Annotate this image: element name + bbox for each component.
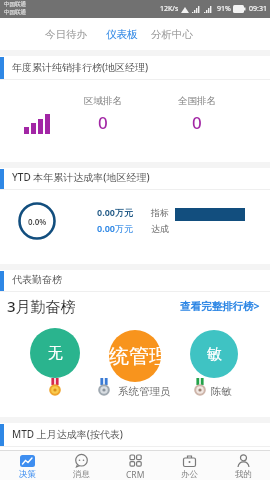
button[interactable]: 统管理 bbox=[109, 330, 161, 382]
staticText: 0.0% bbox=[28, 216, 47, 227]
staticText: 中国联通 bbox=[4, 1, 26, 8]
button[interactable]: 敏 bbox=[190, 330, 238, 378]
staticText: 查看完整排行榜> bbox=[180, 299, 260, 313]
staticText: 0 bbox=[192, 111, 202, 134]
staticText: 消息 bbox=[73, 469, 90, 480]
staticText: MTD 上月达成率(按代表) bbox=[12, 427, 123, 441]
staticText: 年度累计纯销排行榜(地区经理) bbox=[12, 60, 149, 74]
staticText: 12K/s bbox=[160, 4, 179, 14]
staticText: CRM bbox=[126, 469, 145, 480]
staticText: 0 bbox=[98, 111, 108, 134]
staticText: 分析中心 bbox=[151, 28, 193, 41]
staticText: 中国联通 bbox=[4, 9, 26, 16]
staticText: 办公 bbox=[181, 469, 198, 480]
button[interactable]: CRM bbox=[108, 451, 162, 480]
button[interactable]: 决策 bbox=[0, 451, 54, 480]
button[interactable]: 办公 bbox=[162, 451, 216, 480]
button[interactable]: 今日待办 bbox=[26, 21, 106, 47]
staticText: 09:31 bbox=[249, 4, 267, 14]
button[interactable]: 分析中心 bbox=[132, 21, 212, 47]
button[interactable]: 无 bbox=[30, 328, 80, 378]
staticText: 统管理 bbox=[109, 344, 161, 369]
button[interactable]: 消息 bbox=[54, 451, 108, 480]
staticText: 仪表板 bbox=[106, 28, 138, 41]
staticText: 指标 bbox=[151, 207, 169, 218]
staticText: 3月勤奋榜 bbox=[7, 296, 76, 316]
staticText: 全国排名 bbox=[178, 95, 216, 107]
staticText: 今日待办 bbox=[45, 28, 87, 41]
staticText: YTD 本年累计达成率(地区经理) bbox=[12, 170, 150, 184]
staticText: 无 bbox=[48, 344, 63, 363]
staticText: 系统管理员 bbox=[118, 385, 171, 398]
staticText: 敏 bbox=[207, 345, 222, 364]
staticText: 陈敏 bbox=[211, 385, 232, 398]
staticText: 决策 bbox=[19, 469, 36, 480]
staticText: 我的 bbox=[235, 469, 252, 480]
button[interactable]: 仪表板 bbox=[87, 21, 157, 47]
staticText: 0.00万元 bbox=[97, 206, 133, 218]
staticText: 代表勤奋榜 bbox=[12, 273, 62, 286]
staticText: 0.00万元 bbox=[97, 222, 133, 234]
button[interactable]: 我的 bbox=[216, 451, 270, 480]
staticText: 91% bbox=[217, 4, 231, 14]
staticText: 区域排名 bbox=[84, 95, 122, 107]
staticText: 达成 bbox=[151, 223, 169, 234]
button[interactable]: 查看完整排行榜> bbox=[160, 296, 260, 316]
